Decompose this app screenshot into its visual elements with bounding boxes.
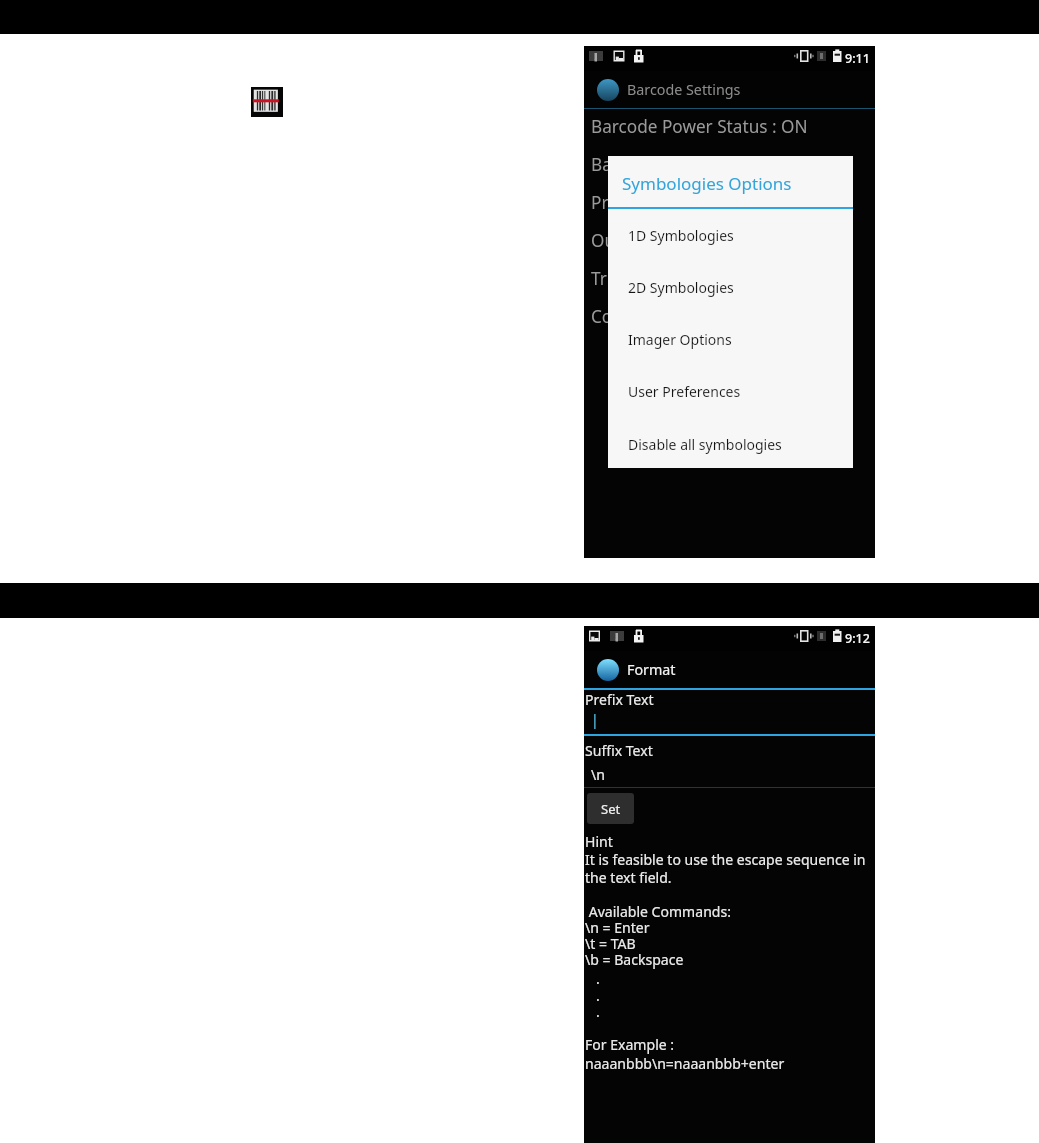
staticText: Trigger Mode [591,267,700,290]
staticText: the text field. [585,868,672,887]
button[interactable]: Prefix / Suffix [584,183,875,221]
button[interactable]: Disable all symbologies [608,418,853,470]
staticText: Set [601,800,621,818]
staticText: User Preferences [628,382,741,401]
staticText: Format [627,660,676,679]
staticText: | [591,710,599,729]
staticText: Available Commands: [585,902,731,921]
button[interactable]: 1D Symbologies [608,209,853,261]
button[interactable]: Output Mode [584,221,875,259]
staticText: . [585,969,600,988]
button[interactable]: 2D Symbologies [608,261,853,313]
button[interactable]: Continuous Mode [584,297,875,335]
button[interactable]: App icon, navigate up [597,659,619,681]
staticText: It is feasible to use the escape sequenc… [585,850,866,869]
staticText: For Example : [585,1035,675,1054]
staticText: \t = TAB [585,934,636,953]
staticText: Continuous Mode [591,305,735,328]
staticText: Output Mode [591,229,700,252]
staticText: \n [591,765,605,784]
staticText: . [585,1002,600,1021]
button[interactable]: App icon, navigate up [584,651,875,688]
button[interactable]: Barcode scanner app icon [251,87,283,117]
button[interactable]: Trigger Mode [584,259,875,297]
button[interactable]: Prefix text field [584,704,875,736]
staticText: . [585,986,600,1005]
staticText: Disable all symbologies [628,435,782,454]
button[interactable]: Suffix text field [584,756,875,788]
staticText: Suffix Text [585,741,653,760]
staticText: Prefix Text [585,690,654,709]
button[interactable]: Set [587,793,634,824]
button[interactable]: App icon, navigate up [597,79,619,101]
staticText: 9:12 [845,630,870,647]
staticText: Prefix / Suffix [591,191,699,214]
staticText: \n = Enter [585,918,650,937]
staticText: Barcode Settings [591,153,728,176]
button[interactable]: User Preferences [608,365,853,417]
staticText: Hint [585,832,613,851]
staticText: Symbologies Options [622,172,792,195]
staticText: \b = Backspace [585,950,684,969]
staticText: Barcode Settings [627,80,741,99]
staticText: Barcode Power Status : ON [591,115,808,138]
staticText: 1D Symbologies [628,226,734,245]
staticText: naaanbbb\n=naaanbbb+enter [585,1054,785,1073]
button[interactable]: Imager Options [608,313,853,365]
staticText: 9:11 [845,50,870,67]
staticText: Imager Options [628,330,732,349]
staticText: 2D Symbologies [628,278,734,297]
button[interactable]: Barcode Settings [584,145,875,183]
button[interactable]: Barcode Power Status : ON [584,107,875,145]
button[interactable]: App icon, navigate up [584,71,875,108]
